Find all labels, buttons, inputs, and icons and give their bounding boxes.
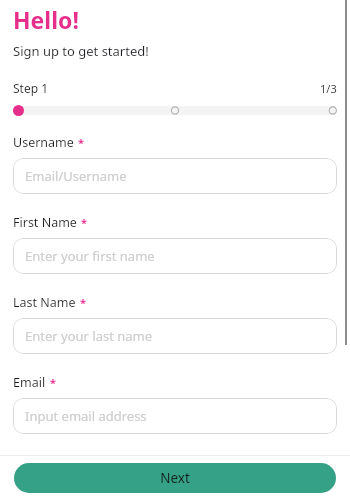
button[interactable]: Enter your last name <box>13 318 337 354</box>
staticText: * <box>80 295 86 310</box>
staticText: Step 1 <box>13 80 49 96</box>
button[interactable]: Email/Username <box>13 158 337 194</box>
staticText: * <box>74 455 80 470</box>
staticText: Hello! <box>13 4 79 35</box>
staticText: Sign up to get started! <box>13 42 149 60</box>
staticText: Enter your first name <box>25 247 155 265</box>
staticText: Enter your last name <box>25 327 153 345</box>
staticText: Last Name <box>13 294 76 311</box>
staticText: Email <box>13 374 46 391</box>
button[interactable]: Input email address <box>13 398 337 434</box>
staticText: * <box>78 135 84 150</box>
staticText: Password <box>13 454 70 471</box>
button[interactable]: Enter your first name <box>13 238 337 274</box>
staticText: * <box>50 375 56 390</box>
staticText: 1/3 <box>320 81 337 96</box>
button[interactable]: Next <box>14 463 336 493</box>
staticText: Username <box>13 134 74 151</box>
staticText: Next <box>160 469 190 487</box>
staticText: * <box>81 215 87 230</box>
button[interactable]: Enter password <box>13 478 337 500</box>
staticText: First Name <box>13 214 77 231</box>
staticText: Enter password <box>25 480 120 498</box>
staticText: Email/Username <box>25 167 127 185</box>
staticText: Input email address <box>25 407 147 425</box>
